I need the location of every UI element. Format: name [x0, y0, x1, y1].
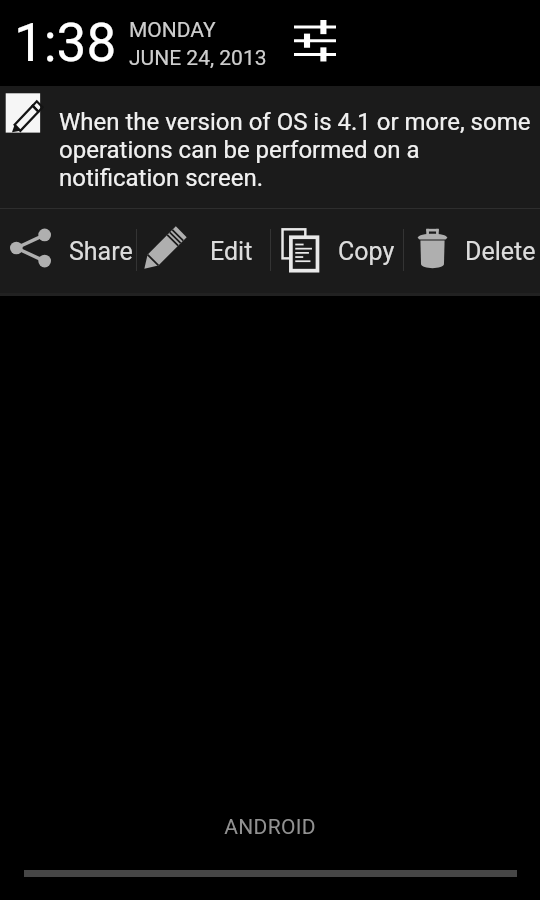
button[interactable]: Edit — [135, 209, 270, 293]
staticText: JUNE 24, 2013 — [129, 46, 267, 71]
staticText: Edit — [210, 237, 253, 266]
button[interactable]: Share — [0, 209, 135, 293]
staticText: ANDROID — [0, 815, 540, 840]
button[interactable]: Copy — [270, 209, 405, 293]
button[interactable]: Delete — [405, 209, 540, 293]
staticText: Delete — [465, 237, 536, 266]
staticText: 1:38 — [14, 12, 117, 74]
button[interactable]: Quick settings — [282, 8, 348, 74]
button[interactable]: When the version of OS is 4.1 or more, s… — [0, 86, 540, 208]
staticText: Copy — [338, 237, 395, 266]
staticText: Share — [69, 237, 133, 266]
staticText: MONDAY — [129, 18, 216, 43]
staticText: When the version of OS is 4.1 or more, s… — [59, 108, 533, 192]
